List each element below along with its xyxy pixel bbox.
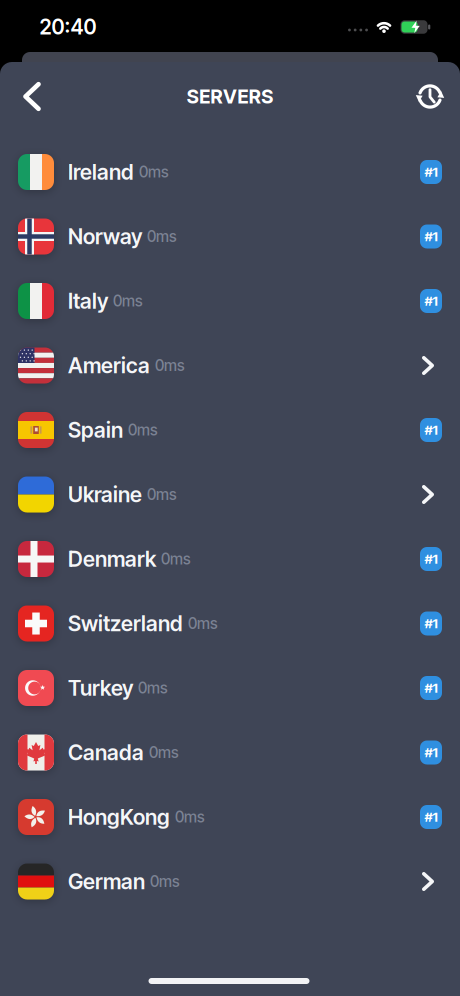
button[interactable]: Switzerland: [0, 591, 460, 656]
staticText: #1: [424, 551, 437, 567]
staticText: 0ms: [147, 227, 177, 246]
button[interactable]: Ireland: [0, 140, 460, 204]
staticText: 0ms: [138, 679, 168, 697]
button[interactable]: Turkey: [0, 656, 460, 720]
staticText: Italy: [68, 288, 108, 314]
staticText: 0ms: [139, 163, 169, 181]
staticText: 0ms: [147, 485, 177, 504]
staticText: Norway: [68, 224, 142, 249]
button[interactable]: Connection history: [408, 74, 452, 118]
button[interactable]: German: [0, 849, 460, 914]
staticText: Ukraine: [68, 482, 142, 507]
button[interactable]: Norway: [0, 204, 460, 269]
staticText: 0ms: [188, 614, 218, 633]
button[interactable]: Canada: [0, 720, 460, 785]
staticText: 20:40: [39, 14, 96, 39]
staticText: German: [68, 869, 145, 894]
staticText: #1: [424, 422, 437, 438]
staticText: 0ms: [161, 550, 191, 568]
staticText: 0ms: [149, 743, 179, 762]
staticText: Ireland: [68, 159, 134, 185]
staticText: 0ms: [175, 808, 205, 826]
button[interactable]: Italy: [0, 269, 460, 333]
button[interactable]: Spain: [0, 398, 460, 462]
staticText: 0ms: [113, 292, 143, 310]
staticText: SERVERS: [187, 85, 273, 108]
staticText: 0ms: [128, 421, 158, 439]
staticText: 0ms: [155, 356, 185, 375]
staticText: #1: [424, 164, 437, 180]
staticText: 0ms: [150, 872, 180, 891]
staticText: #1: [424, 744, 437, 760]
staticText: America: [68, 353, 150, 378]
staticText: Canada: [68, 740, 144, 765]
button[interactable]: Ukraine: [0, 462, 460, 527]
staticText: Turkey: [68, 675, 133, 701]
staticText: HongKong: [68, 804, 170, 830]
button[interactable]: HongKong: [0, 785, 460, 849]
staticText: Spain: [68, 417, 123, 443]
staticText: #1: [424, 615, 437, 631]
button[interactable]: Back: [13, 72, 51, 121]
button[interactable]: America: [0, 333, 460, 398]
button[interactable]: Denmark: [0, 527, 460, 591]
staticText: Denmark: [68, 546, 156, 572]
staticText: #1: [424, 228, 437, 244]
staticText: #1: [424, 680, 437, 696]
staticText: #1: [424, 293, 437, 309]
staticText: #1: [424, 809, 437, 825]
staticText: Switzerland: [68, 611, 183, 636]
